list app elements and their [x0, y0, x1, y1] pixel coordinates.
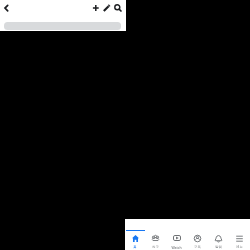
button[interactable]: 홈 — [125, 219, 145, 250]
button[interactable]: Search — [111, 1, 125, 15]
button[interactable]: 구독 — [187, 219, 208, 250]
staticText: 친구 — [152, 245, 159, 249]
staticText: 구독 — [194, 245, 201, 249]
staticText: Watch — [171, 245, 182, 250]
button[interactable]: Back — [0, 1, 13, 15]
button[interactable]: Add — [89, 1, 102, 15]
button[interactable] — [4, 22, 121, 30]
button[interactable]: 친구 — [145, 219, 166, 250]
staticText: 알림 — [215, 245, 222, 249]
staticText: 메뉴 — [236, 245, 243, 249]
staticText: 홈 — [133, 245, 137, 249]
button[interactable]: Watch — [166, 219, 187, 250]
button[interactable]: 메뉴 — [229, 219, 250, 250]
button[interactable]: 알림 — [208, 219, 229, 250]
button[interactable]: Edit — [100, 1, 113, 15]
